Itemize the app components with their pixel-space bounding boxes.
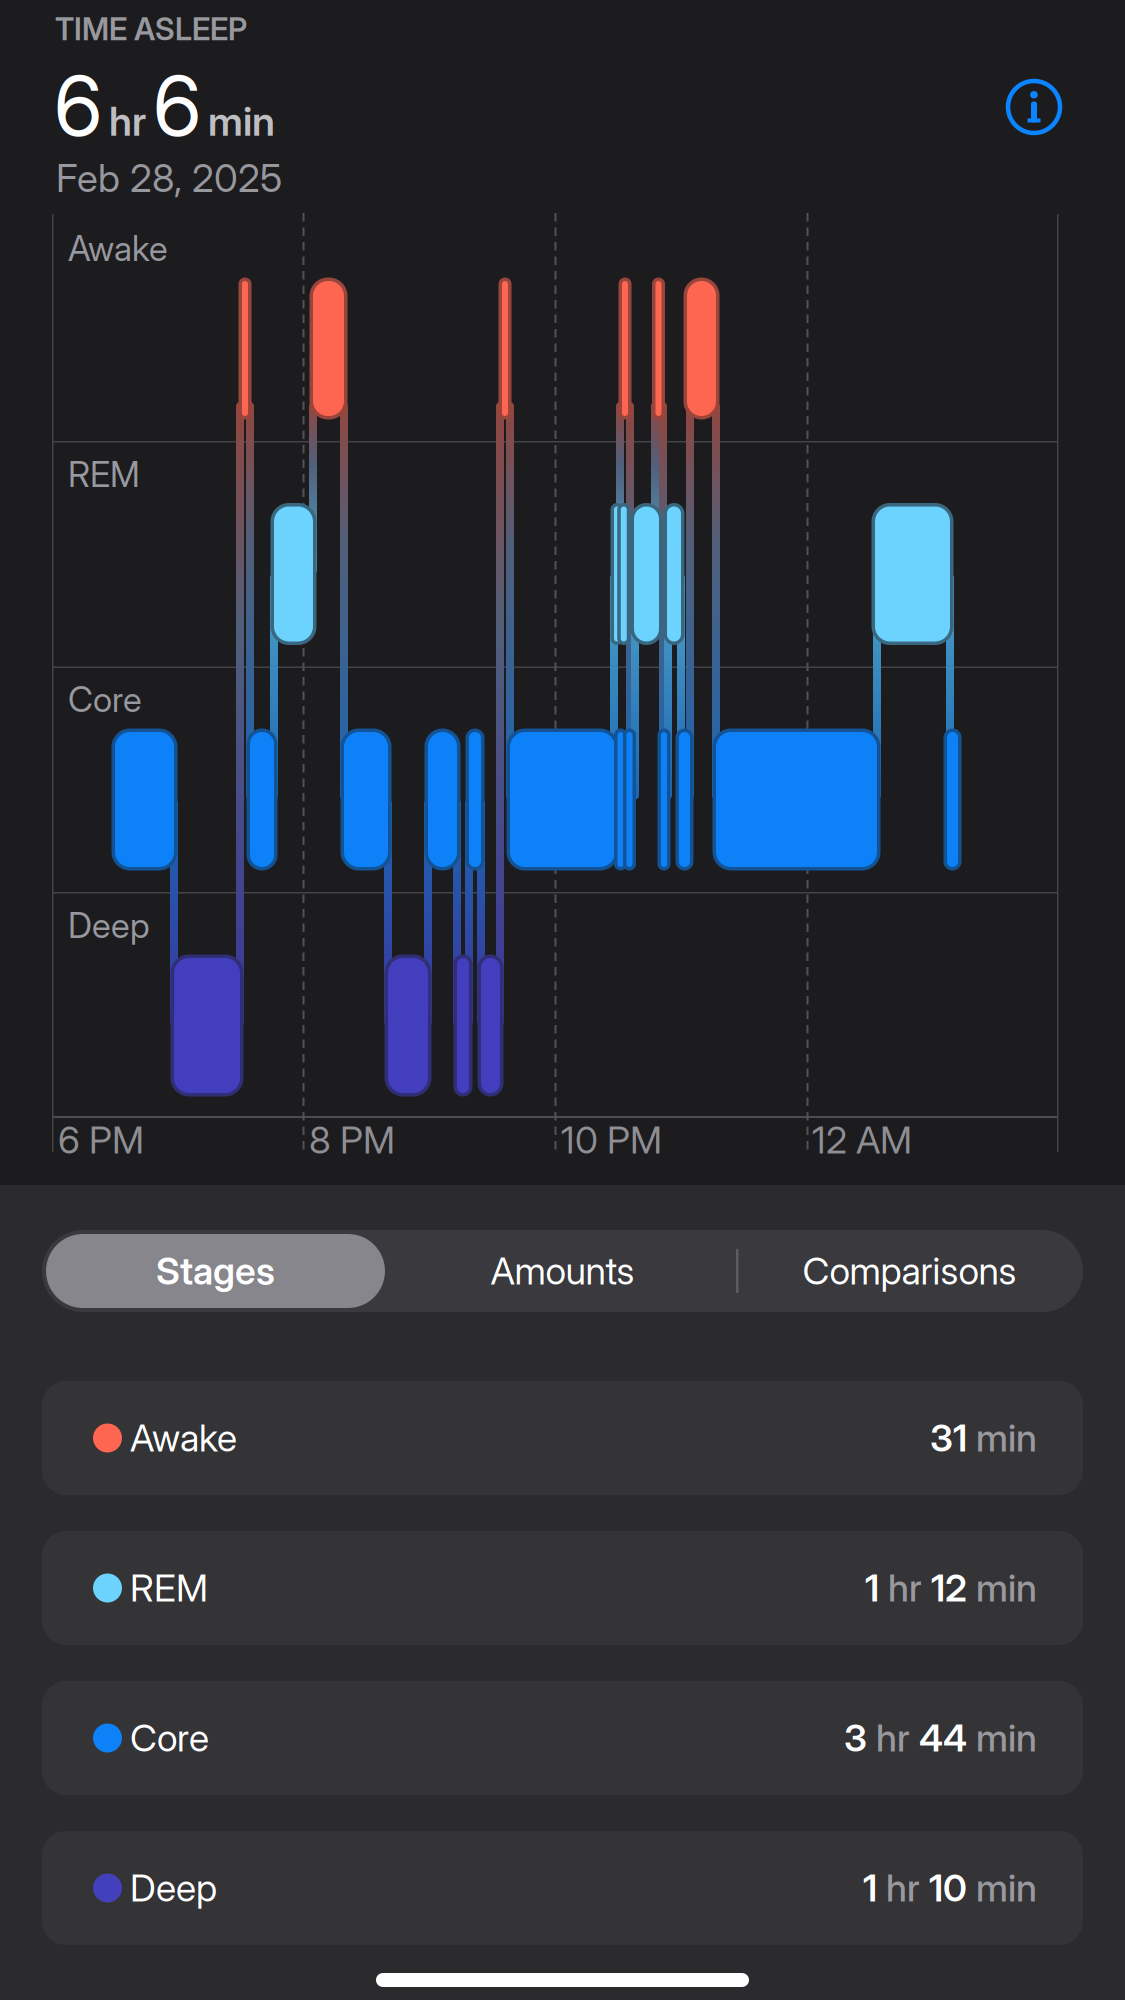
staticText: 10: [929, 1866, 967, 1910]
staticText: TIME ASLEEP: [55, 11, 247, 47]
staticText: hr: [888, 1566, 922, 1610]
staticText: 6: [54, 57, 102, 154]
button[interactable]: Core: [42, 1681, 1083, 1795]
staticText: min: [976, 1866, 1037, 1910]
staticText: 12: [931, 1566, 967, 1610]
staticText: min: [976, 1416, 1037, 1460]
staticText: Awake: [130, 1416, 237, 1460]
staticText: 1: [865, 1566, 879, 1610]
staticText: Comparisons: [802, 1249, 1016, 1293]
staticText: 1: [863, 1866, 877, 1910]
button[interactable]: Deep: [42, 1831, 1083, 1945]
staticText: min: [208, 98, 275, 145]
staticText: Feb 28, 2025: [56, 155, 282, 201]
staticText: 6 PM: [58, 1118, 144, 1162]
staticText: hr: [109, 98, 146, 145]
staticText: Deep: [68, 905, 150, 946]
staticText: 8 PM: [309, 1118, 395, 1162]
button[interactable]: Amounts: [389, 1230, 736, 1312]
staticText: REM: [130, 1566, 208, 1610]
staticText: Awake: [68, 228, 168, 269]
button[interactable]: Comparisons: [736, 1230, 1083, 1312]
staticText: min: [976, 1716, 1037, 1760]
staticText: hr: [886, 1866, 920, 1910]
button[interactable]: [1008, 81, 1060, 133]
staticText: hr: [876, 1716, 910, 1760]
staticText: Deep: [130, 1866, 217, 1910]
button[interactable]: REM: [42, 1531, 1083, 1645]
staticText: 10 PM: [561, 1118, 662, 1162]
staticText: 3: [844, 1716, 867, 1760]
staticText: 6: [153, 57, 201, 154]
staticText: Core: [130, 1716, 209, 1760]
staticText: Stages: [156, 1249, 275, 1293]
staticText: 12 AM: [812, 1118, 912, 1162]
button[interactable]: Awake: [42, 1381, 1083, 1495]
button[interactable]: Stages: [46, 1234, 385, 1308]
staticText: Amounts: [490, 1249, 634, 1293]
staticText: 44: [919, 1716, 967, 1760]
staticText: Core: [68, 679, 142, 720]
staticText: 31: [930, 1416, 967, 1460]
staticText: min: [976, 1566, 1037, 1610]
staticText: REM: [68, 454, 140, 495]
